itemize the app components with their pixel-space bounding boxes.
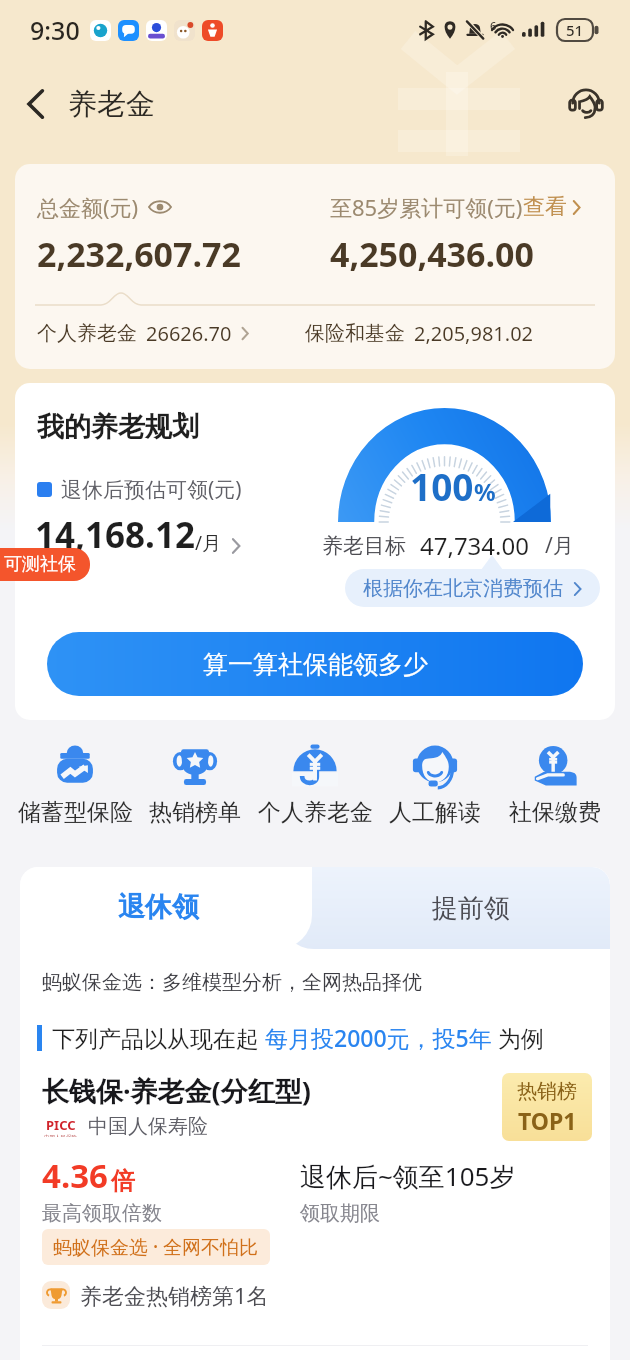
staticText: 100 (410, 461, 474, 511)
staticText: 至85岁累计可领(元) (330, 192, 523, 222)
staticText: 蚂蚁保金选：多维模型分析，全网热品择优 (42, 970, 422, 995)
staticText: 养老金 (68, 86, 155, 123)
staticText: 总金额(元) (37, 192, 139, 222)
staticText: 可测社保 (4, 553, 76, 576)
button[interactable]: 社保缴费 (495, 740, 615, 827)
staticText: 领取期限 (300, 1201, 380, 1226)
staticText: 算一算社保能领多少 (203, 649, 428, 680)
staticText: 查看 (523, 193, 567, 221)
staticText: 4.36 (42, 1153, 108, 1198)
staticText: 14,168.12 (35, 511, 195, 559)
staticText: 蚂蚁保金选 · 全网不怕比 (53, 1234, 259, 1260)
staticText: 6 (490, 18, 497, 33)
staticText: 中国人民保险 (44, 1134, 77, 1137)
button[interactable]: 人工解读 (375, 740, 495, 827)
button[interactable]: 储蓄型保险 (15, 740, 135, 827)
button[interactable]: 根据你在北京消费预估 (345, 569, 600, 607)
button[interactable]: 个人养老金 (255, 740, 375, 827)
button[interactable]: 可测社保 (0, 548, 90, 581)
staticText: PICC (46, 1116, 76, 1134)
staticText: 2,232,607.72 (37, 231, 241, 277)
staticText: 热销榜单 (149, 798, 241, 827)
staticText: 每月投2000元，投5年 (265, 1022, 492, 1053)
staticText: 2,205,981.02 (414, 320, 534, 347)
button[interactable]: 提前领 (280, 867, 610, 949)
staticText: 47,734.00 (420, 529, 529, 562)
button[interactable]: 蚂蚁保金选 · 全网不怕比 (42, 1229, 270, 1265)
staticText: 保险和基金 (305, 321, 405, 346)
staticText: 最高领取倍数 (42, 1201, 162, 1226)
staticText: 我的养老规划 (37, 410, 199, 444)
staticText: 养老目标 (322, 533, 406, 559)
staticText: 社保缴费 (509, 798, 601, 827)
staticText: 26626.70 (146, 320, 232, 347)
staticText: 为例 (492, 1022, 544, 1053)
button[interactable]: 算一算社保能领多少 (47, 632, 583, 696)
button[interactable]: 退休领 (20, 867, 312, 949)
staticText: 下列产品以从现在起 (52, 1022, 265, 1053)
staticText: 退休领 (118, 890, 199, 924)
staticText: 热销榜 (517, 1079, 577, 1104)
staticText: /月 (195, 530, 222, 556)
staticText: 倍 (111, 1166, 135, 1196)
staticText: 储蓄型保险 (18, 798, 133, 827)
staticText: 51 (566, 20, 584, 40)
staticText: 个人养老金 (258, 798, 373, 827)
button[interactable]: Back (12, 80, 60, 128)
button[interactable]: Customer service (560, 78, 612, 130)
staticText: 9:30 (30, 13, 80, 47)
staticText: 退休后~领至105岁 (300, 1158, 516, 1194)
staticText: 养老金热销榜第1名 (80, 1280, 269, 1310)
staticText: 提前领 (432, 892, 510, 925)
staticText: /月 (545, 531, 574, 560)
staticText: 中国人保寿险 (88, 1114, 208, 1139)
staticText: 个人养老金 (37, 321, 137, 346)
staticText: TOP1 (518, 1105, 577, 1136)
button[interactable]: 热销榜 (502, 1073, 592, 1141)
staticText: 人工解读 (389, 798, 481, 827)
button[interactable]: 热销榜单 (135, 740, 255, 827)
staticText: 4,250,436.00 (330, 231, 534, 277)
staticText: 根据你在北京消费预估 (363, 576, 563, 601)
staticText: 退休后预估可领(元) (61, 475, 242, 504)
staticText: 长钱保·养老金(分红型) (42, 1072, 311, 1109)
staticText: % (474, 475, 496, 508)
